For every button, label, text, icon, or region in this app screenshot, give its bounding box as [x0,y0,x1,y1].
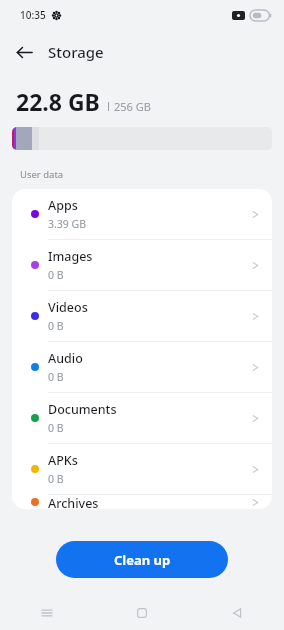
button[interactable]: APKs [12,444,272,494]
button[interactable]: Clean up [56,541,228,578]
staticText: Videos [48,299,88,316]
staticText: Clean up [114,551,171,569]
staticText: 3.39 GB [48,217,87,231]
staticText: 0 B [48,268,64,282]
button[interactable]: Apps [12,189,272,239]
button[interactable]: Back [8,36,40,68]
button[interactable]: Back [189,596,284,630]
button[interactable]: Archives [12,495,272,509]
staticText: 22.8 GB [16,86,100,117]
staticText: User data [20,168,64,181]
staticText: Storage [48,42,104,62]
staticText: APKs [48,452,78,469]
button[interactable]: Images [12,240,272,290]
button[interactable]: Home [94,596,189,630]
staticText: Documents [48,401,117,418]
staticText: 0 B [48,370,64,384]
staticText: 10:35 [20,8,46,22]
staticText: Audio [48,350,83,367]
staticText: Apps [48,197,78,214]
button[interactable]: Documents [12,393,272,443]
staticText: Archives [48,495,99,509]
button[interactable]: Recents [0,596,94,630]
staticText: 0 B [48,421,64,435]
button[interactable]: Videos [12,291,272,341]
staticText: 0 B [48,472,64,486]
staticText: Images [48,248,93,265]
staticText: 0 B [48,319,64,333]
button[interactable]: Audio [12,342,272,392]
staticText: 256 GB [114,99,151,114]
